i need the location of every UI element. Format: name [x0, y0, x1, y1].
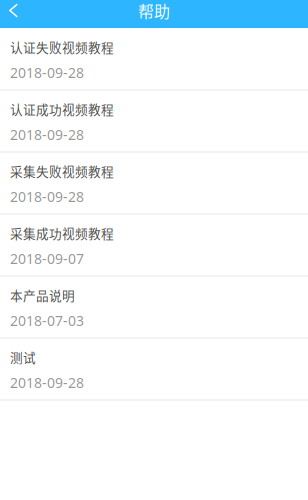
staticText: 认证成功视频教程	[10, 100, 114, 118]
button[interactable]: 认证成功视频教程	[0, 90, 308, 152]
staticText: 2018-07-03	[10, 311, 84, 330]
button[interactable]: 本产品说明	[0, 276, 308, 338]
staticText: 测试	[10, 348, 36, 366]
button[interactable]: 采集失败视频教程	[0, 152, 308, 214]
staticText: 2018-09-28	[10, 125, 84, 144]
staticText: 采集失败视频教程	[10, 162, 114, 180]
button[interactable]: 认证失败视频教程	[0, 28, 308, 90]
button[interactable]: 测试	[0, 338, 308, 400]
staticText: 本产品说明	[10, 286, 75, 304]
staticText: 2018-09-28	[10, 63, 84, 82]
staticText: 认证失败视频教程	[10, 38, 114, 56]
staticText: 2018-09-28	[10, 373, 84, 392]
button[interactable]: 采集成功视频教程	[0, 214, 308, 276]
staticText: 2018-09-28	[10, 187, 84, 206]
staticText: 采集成功视频教程	[10, 224, 114, 242]
button[interactable]: Back	[0, 0, 27, 21]
staticText: 帮助	[138, 0, 170, 22]
staticText: 2018-09-07	[10, 249, 84, 268]
